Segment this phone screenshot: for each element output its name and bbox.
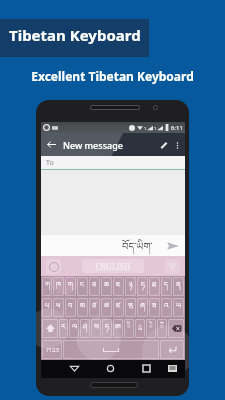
button[interactable]: Key <box>69 319 79 338</box>
button[interactable]: Key <box>77 277 88 296</box>
staticText: To <box>46 158 54 168</box>
button[interactable]: Attach <box>155 137 171 153</box>
staticText: ད <box>164 277 169 296</box>
button[interactable]: Enter <box>160 340 184 359</box>
staticText: ཞ <box>140 298 145 317</box>
button[interactable]: Key <box>135 319 145 338</box>
button[interactable]: Key <box>102 319 112 338</box>
button[interactable]: Settings <box>165 259 180 274</box>
button[interactable]: Key <box>59 319 68 338</box>
button[interactable]: Shift <box>42 319 58 338</box>
staticText: Tibetan Keyboard <box>9 25 141 45</box>
button[interactable]: Key <box>113 319 123 338</box>
staticText: ཀ <box>45 277 50 296</box>
button[interactable]: Key <box>65 298 76 317</box>
button[interactable]: Key <box>42 277 52 296</box>
staticText: ོ <box>160 319 164 338</box>
button[interactable]: Key <box>42 298 52 317</box>
button[interactable]: Back <box>66 360 82 376</box>
staticText: ཅ <box>92 277 97 296</box>
staticText: ཐ <box>152 277 157 296</box>
staticText: ཆ <box>104 277 109 296</box>
button[interactable]: Key <box>101 298 112 317</box>
staticText: Excellent Tibetan Keyboard <box>0 68 225 84</box>
staticText: མ <box>80 298 85 317</box>
button[interactable]: Key <box>101 277 112 296</box>
button[interactable]: Hide keyboard <box>164 360 180 376</box>
button[interactable]: Home <box>102 360 118 376</box>
staticText: ཙ <box>92 298 97 317</box>
button[interactable]: Key <box>173 298 184 317</box>
staticText: ཝ <box>128 298 134 317</box>
button[interactable]: Backspace <box>168 319 184 338</box>
button[interactable]: Space <box>63 340 159 359</box>
staticText: ཨ <box>115 319 121 338</box>
staticText: ཉ <box>129 277 133 296</box>
button[interactable]: Key <box>53 277 64 296</box>
staticText: ཚ <box>104 298 109 317</box>
button[interactable]: Emoji <box>46 259 61 274</box>
button[interactable]: Key <box>80 319 90 338</box>
staticText: བོད་ཡིག་ <box>122 235 153 256</box>
staticText: 1 <box>144 126 147 131</box>
staticText: ཡ <box>176 298 182 317</box>
button[interactable]: Recents <box>138 360 154 376</box>
staticText: ང <box>80 277 85 296</box>
staticText: ཧ <box>105 319 109 338</box>
staticText: ?123 <box>46 346 59 354</box>
button[interactable]: Key <box>65 277 76 296</box>
staticText: ཟ <box>152 298 157 317</box>
staticText: ཇ <box>116 277 121 296</box>
staticText: ཏ <box>141 277 145 296</box>
button[interactable]: Key <box>146 319 156 338</box>
staticText: པ <box>45 298 50 317</box>
staticText: New message <box>63 139 123 151</box>
staticText: 6:11 <box>171 124 183 132</box>
button[interactable]: Key <box>89 277 100 296</box>
staticText: ག <box>68 277 73 296</box>
staticText: ས <box>94 319 99 338</box>
staticText: ཕ <box>56 298 61 317</box>
button[interactable]: ENGLISH <box>82 259 144 273</box>
button[interactable]: ?123 <box>42 340 62 359</box>
button[interactable]: Key <box>125 298 136 317</box>
staticText: ར <box>61 319 66 338</box>
staticText: ཤ <box>83 319 88 338</box>
staticText: འ <box>164 298 169 317</box>
staticText: ཛ <box>116 298 121 317</box>
staticText: ེ <box>149 319 153 338</box>
button[interactable]: Key <box>137 277 148 296</box>
button[interactable]: Key <box>137 298 148 317</box>
button[interactable]: Key <box>89 298 100 317</box>
button[interactable]: More options <box>171 139 183 151</box>
button[interactable]: Back <box>43 136 60 153</box>
button[interactable]: Key <box>149 277 160 296</box>
staticText: ཁ <box>56 277 61 296</box>
staticText: 1 <box>154 126 157 131</box>
button[interactable]: Send <box>164 237 181 254</box>
button[interactable]: Key <box>53 298 64 317</box>
button[interactable]: Key <box>173 277 184 296</box>
staticText: ན <box>176 277 181 296</box>
button[interactable]: Key <box>113 298 124 317</box>
button[interactable]: Key <box>113 277 124 296</box>
staticText: བ <box>68 298 73 317</box>
staticText: ུ <box>138 319 142 338</box>
button[interactable]: Key <box>125 277 136 296</box>
button[interactable]: Key <box>124 319 134 338</box>
button[interactable]: Key <box>157 319 167 338</box>
staticText: ལ <box>72 319 77 338</box>
button[interactable]: Key <box>161 298 172 317</box>
staticText: ENGLISH <box>95 261 131 272</box>
staticText: ི <box>127 319 131 338</box>
button[interactable]: Key <box>91 319 101 338</box>
button[interactable]: Key <box>149 298 160 317</box>
button[interactable]: Key <box>77 298 88 317</box>
button[interactable]: Key <box>161 277 172 296</box>
